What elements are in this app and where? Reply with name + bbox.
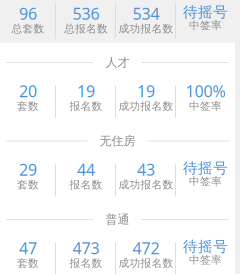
staticText: 中签率: [189, 100, 222, 113]
staticText: 中签率: [189, 253, 222, 267]
staticText: 473: [72, 237, 99, 259]
staticText: 总套数: [11, 22, 44, 35]
staticText: 成功报名数: [118, 178, 173, 191]
staticText: 成功报名数: [118, 100, 173, 113]
staticText: 待摇号: [183, 237, 228, 255]
staticText: 536: [72, 3, 99, 24]
staticText: 19: [77, 80, 95, 102]
staticText: 套数: [17, 178, 39, 191]
staticText: 中签率: [189, 19, 222, 32]
staticText: 成功报名数: [118, 22, 173, 35]
staticText: 20: [19, 80, 37, 102]
staticText: 43: [137, 159, 155, 180]
staticText: 待摇号: [183, 159, 228, 177]
staticText: 19: [137, 80, 155, 102]
staticText: 29: [19, 159, 37, 180]
staticText: 报名数: [69, 178, 102, 191]
staticText: 报名数: [69, 100, 102, 113]
staticText: 无住房: [99, 134, 135, 148]
staticText: 47: [19, 237, 37, 259]
staticText: 普通: [105, 212, 129, 227]
staticText: 套数: [17, 100, 39, 113]
staticText: 成功报名数: [118, 257, 173, 270]
staticText: 套数: [17, 257, 39, 270]
staticText: 534: [132, 3, 159, 24]
staticText: 44: [77, 159, 95, 180]
staticText: 待摇号: [183, 3, 228, 21]
staticText: 96: [19, 3, 37, 24]
staticText: 472: [132, 237, 159, 259]
staticText: 总报名数: [64, 22, 108, 35]
staticText: 报名数: [69, 257, 102, 270]
staticText: 100%: [185, 80, 225, 102]
staticText: 人才: [105, 55, 129, 70]
staticText: 中签率: [189, 175, 222, 188]
